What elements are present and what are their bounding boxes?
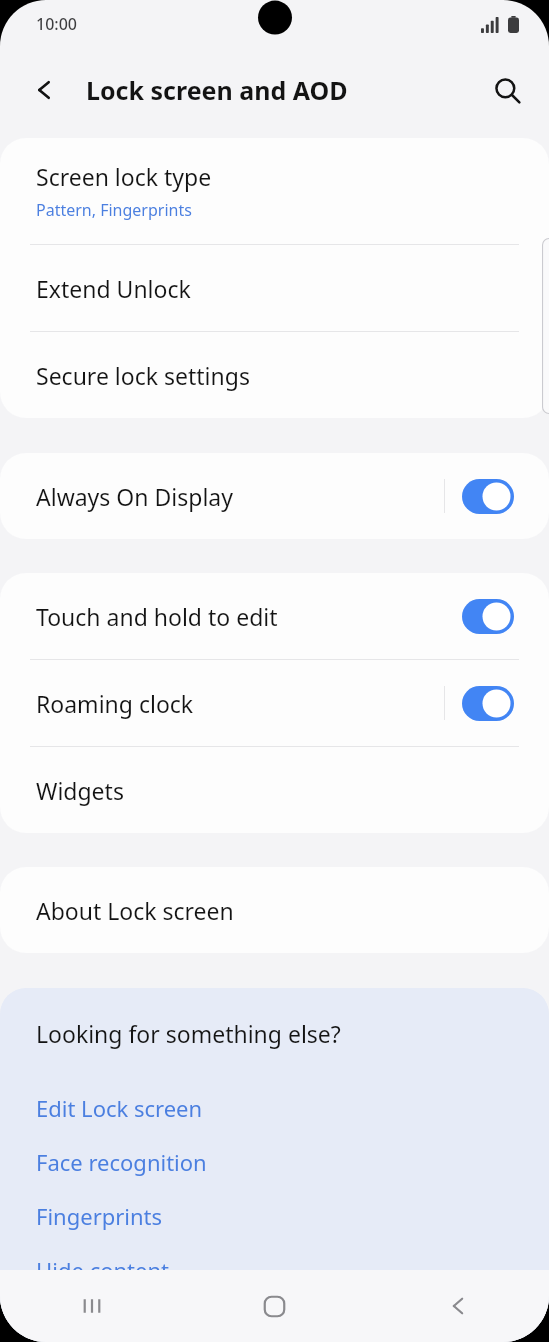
button[interactable]: Back [20,66,68,114]
button[interactable]: Back [366,1270,549,1342]
button[interactable]: Screen lock type [0,138,549,244]
staticText: Screen lock type [36,161,212,192]
staticText: Notifications [36,1305,167,1335]
button[interactable]: Toggle on [462,686,514,721]
button[interactable]: Touch and hold to edit [0,573,549,659]
staticText: Edit Lock screen [36,1093,203,1123]
button[interactable]: Extend Unlock [0,245,549,331]
button[interactable]: Edit Lock screen [0,1081,549,1135]
staticText: Looking for something else? [36,1018,341,1049]
staticText: Always On Display [36,481,444,512]
button[interactable]: Secure lock settings [0,332,549,418]
staticText: About Lock screen [36,895,234,926]
button[interactable]: Home [183,1270,366,1342]
button[interactable]: Hide content [0,1243,549,1297]
staticText: Fingerprints [36,1201,163,1231]
staticText: Widgets [36,775,124,806]
button[interactable]: Recents [0,1270,183,1342]
button[interactable]: Fingerprints [0,1189,549,1243]
staticText: Roaming clock [36,688,444,719]
button[interactable]: Face recognition [0,1135,549,1189]
button[interactable]: Notifications [0,1297,549,1342]
staticText: Face recognition [36,1147,207,1177]
button[interactable]: About Lock screen [0,867,549,953]
staticText: Hide content [36,1255,169,1285]
staticText: Touch and hold to edit [36,601,444,632]
button[interactable]: Toggle on [462,599,514,634]
staticText: Pattern, Fingerprints [36,199,192,221]
button[interactable]: Roaming clock [0,660,549,746]
button[interactable]: Widgets [0,747,549,833]
button[interactable]: Always On Display [0,453,549,539]
staticText: Extend Unlock [36,273,191,304]
button[interactable]: Toggle on [462,479,514,514]
staticText: Lock screen and AOD [86,73,348,107]
staticText: Secure lock settings [36,360,250,391]
button[interactable]: Search [483,66,531,114]
staticText: 10:00 [36,13,77,35]
